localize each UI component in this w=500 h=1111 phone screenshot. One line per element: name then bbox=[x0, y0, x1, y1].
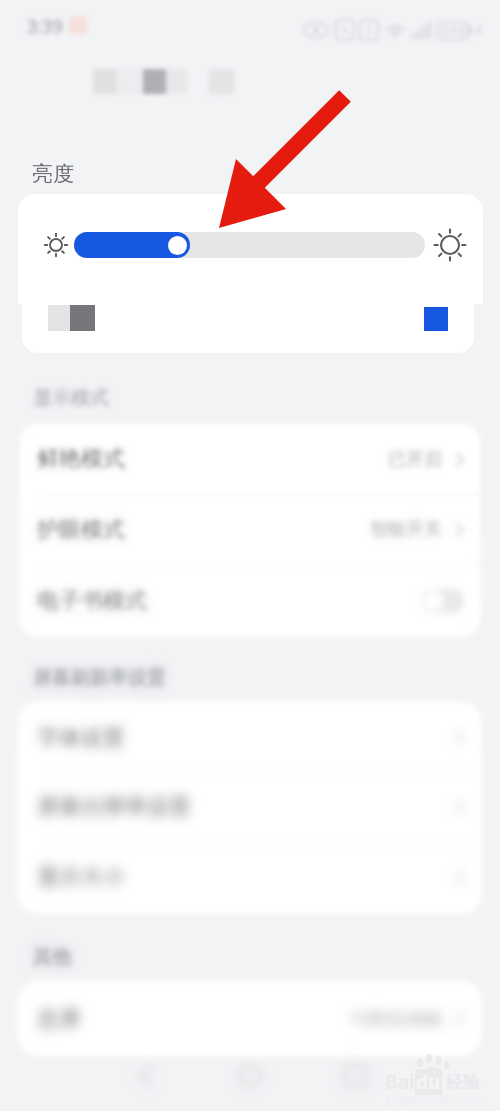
staticText: 已开启 bbox=[388, 448, 442, 471]
staticText: 字体设置 bbox=[37, 724, 125, 752]
button[interactable]: 护眼模式 bbox=[20, 494, 480, 565]
staticText: 3:39 bbox=[27, 14, 63, 39]
staticText: 智能开关 bbox=[370, 518, 442, 541]
staticText: 屏幕刷新率设置 bbox=[33, 666, 166, 690]
staticText: 显示大小 bbox=[37, 863, 125, 891]
staticText: 鲜艳模式 bbox=[37, 445, 125, 473]
button[interactable]: 息屏 bbox=[20, 983, 480, 1054]
button[interactable]: 字体设置 bbox=[20, 703, 480, 772]
button[interactable]: 屏幕分辨率设置 bbox=[20, 772, 480, 842]
staticText: 15秒后休眠 bbox=[349, 1006, 442, 1031]
button[interactable]: 屏幕分辨率设置 bbox=[20, 772, 480, 842]
staticText: Bai bbox=[385, 1069, 415, 1095]
staticText: 经验 bbox=[446, 1072, 480, 1093]
staticText: 已开启 bbox=[388, 448, 442, 471]
staticText: 息屏 bbox=[37, 1005, 81, 1033]
button[interactable]: 字体设置 bbox=[20, 703, 480, 772]
staticText: 护眼模式 bbox=[37, 516, 125, 544]
button[interactable] bbox=[18, 194, 483, 304]
staticText: 显示模式 bbox=[33, 386, 109, 410]
button[interactable] bbox=[22, 298, 474, 353]
staticText: 电子书模式 bbox=[37, 587, 147, 615]
staticText: 显示模式 bbox=[33, 386, 109, 410]
staticText: 屏幕刷新率设置 bbox=[33, 666, 166, 690]
staticText: 智能开关 bbox=[370, 518, 442, 541]
staticText: 鲜艳模式 bbox=[37, 445, 125, 473]
button[interactable]: 显示大小 bbox=[20, 842, 480, 912]
staticText: 屏幕分辨率设置 bbox=[37, 793, 191, 821]
button[interactable]: 鲜艳模式 bbox=[20, 424, 480, 494]
staticText: 15秒后休眠 bbox=[349, 1006, 442, 1031]
button[interactable]: 鲜艳模式 bbox=[20, 424, 480, 494]
staticText: 其他 bbox=[33, 945, 71, 969]
button[interactable]: 电子书模式 bbox=[20, 565, 480, 636]
button[interactable]: 护眼模式 bbox=[20, 494, 480, 565]
staticText: 电子书模式 bbox=[37, 587, 147, 615]
staticText: du bbox=[416, 1069, 441, 1095]
staticText: 字体设置 bbox=[37, 724, 125, 752]
staticText: 亮度 bbox=[32, 161, 74, 187]
staticText: 显示大小 bbox=[37, 863, 125, 891]
button[interactable]: 显示大小 bbox=[20, 842, 480, 912]
staticText: 屏幕分辨率设置 bbox=[37, 793, 191, 821]
staticText: 护眼模式 bbox=[37, 516, 125, 544]
button[interactable]: 息屏 bbox=[20, 983, 480, 1054]
staticText: 其他 bbox=[33, 945, 71, 969]
button[interactable]: 电子书模式 bbox=[20, 565, 480, 636]
staticText: 息屏 bbox=[37, 1005, 81, 1033]
